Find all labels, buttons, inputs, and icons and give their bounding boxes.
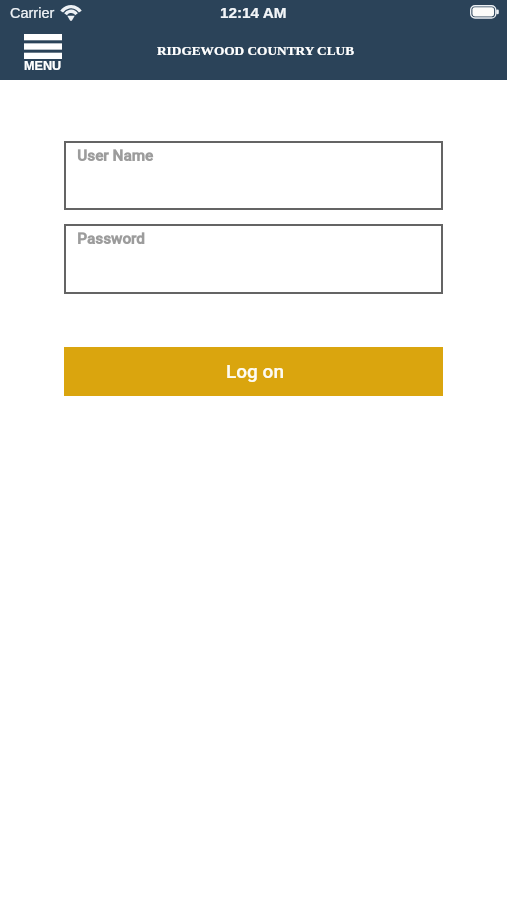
button[interactable]: Open navigation menu [24, 34, 62, 73]
staticText: MENU [24, 59, 62, 73]
other: Battery full [470, 5, 500, 19]
staticText: Carrier [10, 5, 55, 21]
staticText: Password [77, 230, 145, 248]
button[interactable]: User Name [64, 141, 443, 210]
other: Wi-Fi signal [59, 5, 83, 20]
staticText: RIDGEWOOD COUNTRY CLUB [157, 43, 355, 58]
button[interactable]: Password [64, 224, 443, 294]
button[interactable]: Log on [64, 347, 443, 396]
staticText: User Name [77, 147, 153, 165]
staticText: 12:14 AM [220, 4, 287, 21]
staticText: Log on [226, 360, 284, 382]
